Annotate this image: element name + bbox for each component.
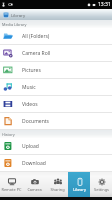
staticText: Upload: [22, 143, 39, 150]
staticText: Music: [22, 84, 36, 91]
button[interactable]: Videos: [0, 96, 112, 113]
button[interactable]: Settings: [90, 172, 112, 197]
staticText: Media Library: [2, 22, 27, 27]
button[interactable]: Remote PC: [0, 172, 23, 197]
staticText: Camera: [27, 187, 42, 192]
staticText: Videos: [22, 101, 38, 108]
staticText: Sharing: [50, 187, 65, 192]
staticText: Settings: [94, 187, 109, 192]
staticText: Camera Roll: [22, 50, 51, 57]
button[interactable]: Upload: [0, 138, 112, 155]
staticText: Library: [73, 187, 86, 192]
staticText: History: [2, 132, 15, 137]
button[interactable]: Pictures: [0, 62, 112, 79]
staticText: Pictures: [22, 67, 41, 74]
staticText: Library: [11, 12, 26, 18]
button[interactable]: Camera: [23, 172, 46, 197]
button[interactable]: Library: [0, 9, 112, 20]
staticText: 13:31: [98, 1, 111, 8]
button[interactable]: Music: [0, 79, 112, 96]
staticText: Remote PC: [1, 187, 22, 192]
staticText: All (Folders): [22, 33, 50, 40]
staticText: Documents: [22, 118, 49, 125]
button[interactable]: All (Folders): [0, 28, 112, 45]
button[interactable]: Library: [68, 172, 90, 197]
button[interactable]: Camera Roll: [0, 45, 112, 62]
button[interactable]: Sharing: [46, 172, 68, 197]
button[interactable]: Documents: [0, 113, 112, 130]
staticText: Download: [22, 160, 46, 167]
button[interactable]: Download: [0, 155, 112, 172]
